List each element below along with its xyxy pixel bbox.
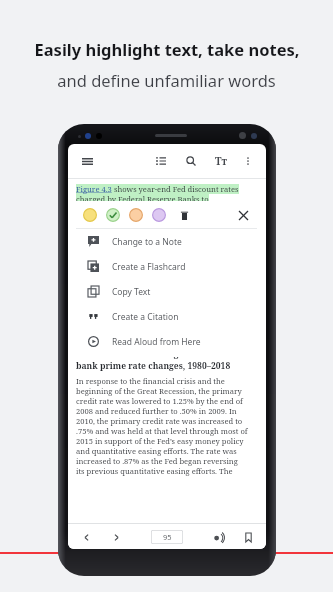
button[interactable]: Contents xyxy=(151,151,171,171)
staticText: charged by Federal Reserve Banks to xyxy=(76,194,209,204)
button[interactable]: 95 xyxy=(151,530,183,544)
button[interactable]: Previous page xyxy=(78,529,94,545)
button[interactable]: Menu xyxy=(77,151,97,171)
staticText: shows year-end Fed discount rates xyxy=(112,184,239,194)
button[interactable]: Highlight colour xyxy=(106,208,120,222)
staticText: credit rate was lowered to 1.25% by the … xyxy=(76,396,243,406)
staticText: In response to the financial crisis and … xyxy=(76,376,225,386)
staticText: 2010, the primary credit rate was increa… xyxy=(76,416,243,426)
staticText: continuing through 2018. Interest rates … xyxy=(76,224,230,234)
button[interactable]: Create a Flashcard xyxy=(76,254,257,279)
button[interactable]: Highlight colour xyxy=(129,208,143,222)
button[interactable]: Create a Citation xyxy=(76,304,257,329)
button[interactable]: More options xyxy=(239,152,257,170)
staticText: 2015 in support of the Fed’s easy money … xyxy=(76,436,244,446)
button[interactable]: Next page xyxy=(108,529,124,545)
staticText: and quantitative easing efforts. The rat… xyxy=(76,446,237,456)
button[interactable]: Close xyxy=(236,208,250,222)
staticText: 2008 and reduced further to .50% in 2009… xyxy=(76,406,237,416)
staticText: Create a Citation xyxy=(112,311,179,323)
button[interactable]: Text settings xyxy=(211,151,231,171)
staticText: Read Aloud from Here xyxy=(112,336,201,348)
staticText: Copy Text xyxy=(112,286,151,298)
staticText: its previous quantitative easing efforts… xyxy=(76,466,233,476)
staticText: 95 xyxy=(163,532,172,542)
staticText: Fed lending rate versus xyxy=(124,348,229,360)
staticText: depository institutions to borrow at the xyxy=(76,204,219,214)
staticText: bank prime rate changes, 1980–2018 xyxy=(76,360,231,372)
button[interactable]: Bookmark xyxy=(240,529,256,545)
button[interactable]: Delete highlight xyxy=(177,208,191,222)
button[interactable]: Search xyxy=(181,151,201,171)
staticText: beginning of the Great Recession, the pr… xyxy=(76,386,242,396)
staticText: Create a Flashcard xyxy=(112,261,186,273)
staticText: .75% and was held at that level through … xyxy=(76,426,248,436)
staticText: discount window beginning in 1980 and xyxy=(76,214,221,224)
staticText: Easily highlight text, take notes, xyxy=(34,38,300,60)
button[interactable]: Copy Text xyxy=(76,279,257,304)
button[interactable]: Read Aloud from Here xyxy=(76,329,257,354)
staticText: Tт xyxy=(215,154,228,168)
staticText: increased to .87% as the Fed began rever… xyxy=(76,456,238,466)
button[interactable]: Highlight colour xyxy=(83,208,97,222)
staticText: and define unfamiliar words xyxy=(57,69,276,91)
button[interactable]: Read aloud xyxy=(210,529,226,545)
staticText: Figure 4.3 xyxy=(76,184,112,194)
staticText: Change to a Note xyxy=(112,236,182,248)
button[interactable]: Highlight colour xyxy=(152,208,166,222)
button[interactable]: Change to a Note xyxy=(76,229,257,254)
